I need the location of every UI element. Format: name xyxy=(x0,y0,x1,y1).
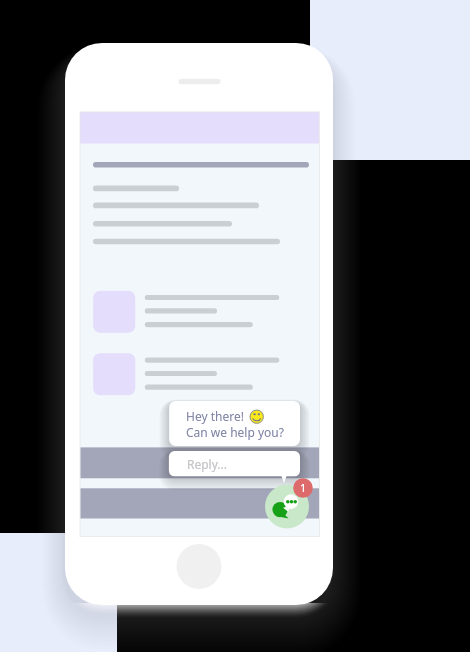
button[interactable]: Section bar 2 xyxy=(81,488,320,518)
staticText: Hey there! xyxy=(186,408,244,424)
button[interactable]: Reply... xyxy=(169,451,300,476)
button[interactable]: Hey there! xyxy=(169,401,300,446)
button[interactable]: List item 1 xyxy=(81,285,320,339)
staticText: Can we help you? xyxy=(186,424,284,440)
staticText: Reply... xyxy=(187,456,227,472)
button[interactable]: List item 2 xyxy=(81,348,320,402)
staticText: 1 xyxy=(300,480,307,495)
button[interactable]: Open chat xyxy=(265,484,309,528)
button[interactable]: Section bar 1 xyxy=(81,447,320,478)
